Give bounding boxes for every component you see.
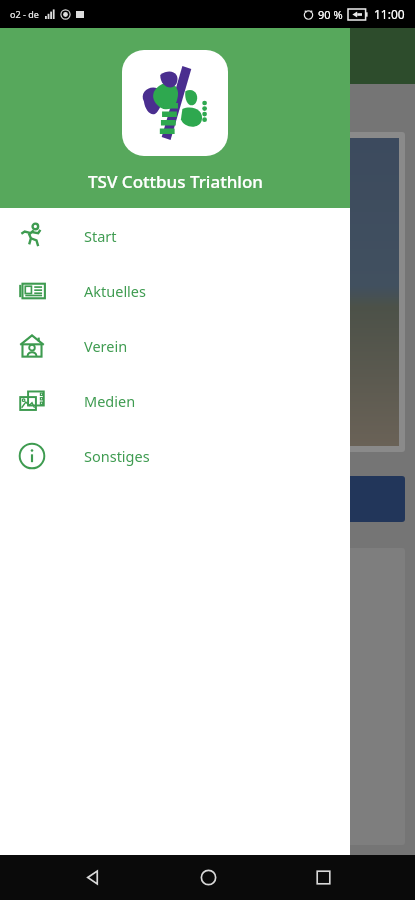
button[interactable]: Recent apps	[300, 855, 346, 900]
button[interactable]: Back	[69, 855, 115, 900]
button[interactable]	[10, 476, 405, 522]
button[interactable]: Aktuelles	[0, 263, 350, 318]
staticText: Verein	[84, 336, 128, 356]
staticText: 11:00	[374, 6, 405, 22]
other: Verein	[18, 332, 46, 360]
staticText: Start	[84, 226, 117, 246]
other: Aktuelles	[18, 277, 46, 305]
button[interactable]: Start	[0, 208, 350, 263]
button[interactable]: Medien	[0, 373, 350, 428]
staticText: TSV Cottbus Triathlon	[88, 170, 263, 193]
staticText: Medien	[84, 391, 136, 411]
staticText: o2 - de	[10, 8, 39, 20]
staticText: Aktuelles	[84, 281, 146, 301]
other: Medien	[18, 387, 46, 415]
staticText: 90 %	[318, 7, 343, 22]
other: Sonstiges	[18, 442, 46, 470]
button[interactable]: Sonstiges	[0, 428, 350, 483]
staticText: Sonstiges	[84, 446, 150, 466]
button[interactable]: Verein	[0, 318, 350, 373]
other: Start	[18, 222, 46, 250]
button[interactable]: Home	[185, 855, 231, 900]
